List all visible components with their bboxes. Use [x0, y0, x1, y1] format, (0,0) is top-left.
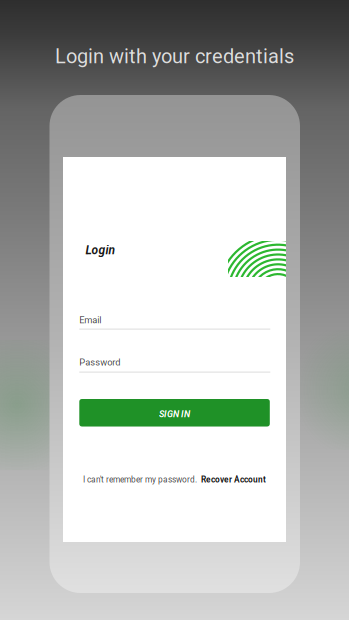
- staticText: Recover Account: [201, 475, 266, 484]
- staticText: Email: [79, 315, 101, 325]
- staticText: Login: [85, 243, 115, 257]
- staticText: Login with your credentials: [55, 45, 294, 68]
- button[interactable]: I can't remember my password.: [63, 473, 286, 487]
- staticText: SIGN IN: [159, 409, 190, 419]
- staticText: I can't remember my password.: [83, 475, 197, 484]
- staticText: Password: [79, 357, 120, 368]
- button[interactable]: SIGN IN: [79, 399, 270, 426]
